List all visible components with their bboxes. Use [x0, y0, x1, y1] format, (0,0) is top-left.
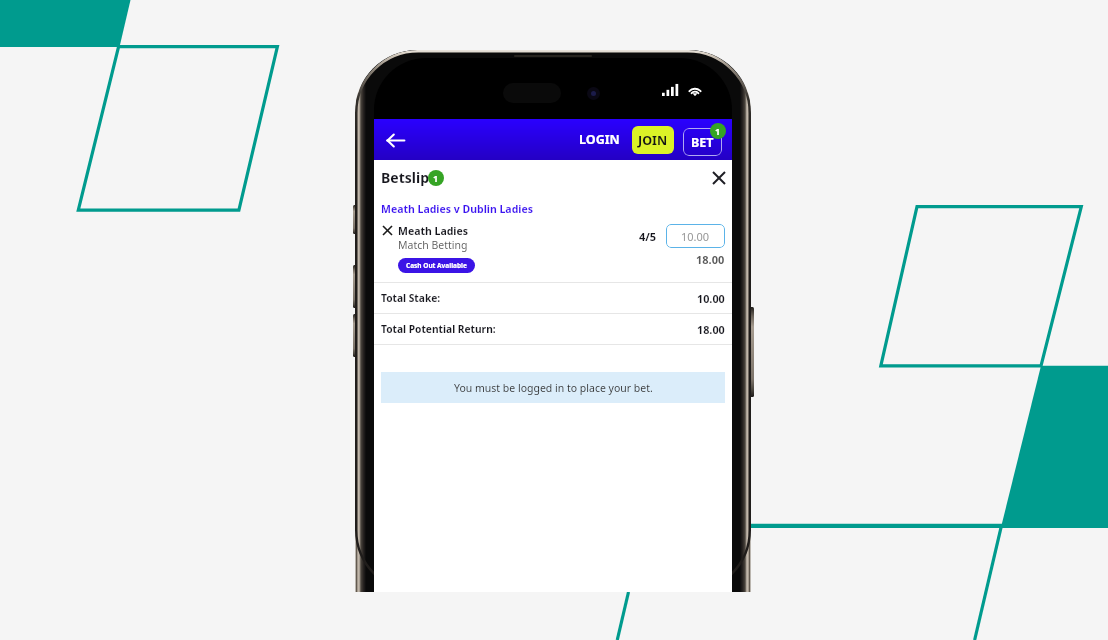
staticText: 4/5	[639, 229, 657, 244]
button[interactable]: BET	[683, 128, 722, 156]
staticText: Total Stake:	[381, 291, 441, 305]
staticText: BET	[691, 134, 714, 151]
button[interactable]: LOGIN	[575, 125, 624, 154]
staticText: 18.00	[696, 252, 725, 267]
staticText: 1	[433, 172, 439, 184]
button[interactable]: Remove selection	[381, 224, 393, 236]
staticText: Meath Ladies	[398, 224, 469, 238]
staticText: 18.00	[697, 322, 725, 337]
staticText: LOGIN	[579, 131, 620, 148]
staticText: Cash Out Available	[406, 261, 467, 270]
button[interactable]: Meath Ladies v Dublin Ladies	[381, 202, 533, 216]
staticText: 10.00	[697, 291, 725, 306]
staticText: You must be logged in to place your bet.	[454, 381, 653, 395]
staticText: JOIN	[638, 132, 668, 149]
staticText: 10.00	[681, 229, 710, 244]
button[interactable]: You must be logged in to place your bet.	[381, 372, 725, 403]
button[interactable]: Cash Out Available	[398, 258, 475, 273]
button[interactable]: 10.00	[666, 224, 725, 248]
staticText: 1	[715, 125, 721, 137]
staticText: Total Potential Return:	[381, 322, 496, 336]
button[interactable]: JOIN	[632, 126, 674, 154]
staticText: Match Betting	[398, 238, 468, 252]
button[interactable]: Close betslip	[707, 166, 731, 190]
staticText: Betslip	[381, 168, 429, 187]
button[interactable]: Back	[381, 126, 409, 154]
